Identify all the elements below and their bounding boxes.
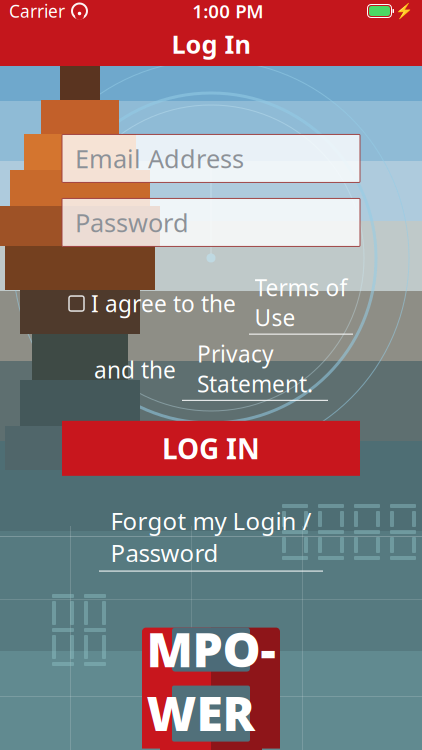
staticText: Terms of Use bbox=[254, 272, 347, 333]
staticText: Carrier bbox=[9, 0, 65, 22]
staticText: Log In bbox=[171, 27, 250, 61]
staticText: MPOWER bbox=[146, 617, 275, 744]
button[interactable]: Forgot my Login / Password bbox=[99, 505, 323, 571]
staticText: and the bbox=[94, 355, 182, 385]
button[interactable]: LOG IN bbox=[62, 421, 360, 476]
button[interactable]: Privacy Statement. bbox=[182, 339, 328, 401]
button[interactable]: I agree to the Terms of Use and the Priv… bbox=[69, 296, 84, 311]
staticText: ⚡ bbox=[395, 3, 413, 19]
staticText: CYBERSECURITY SUMMIT bbox=[153, 746, 268, 750]
button[interactable]: Terms of Use bbox=[249, 272, 353, 335]
staticText: Password bbox=[75, 206, 189, 239]
staticText: Email Address bbox=[75, 142, 244, 175]
staticText: I agree to the bbox=[91, 288, 242, 319]
staticText: LOG IN bbox=[162, 430, 260, 467]
staticText: Privacy Statement. bbox=[197, 339, 313, 399]
staticText: 1:00 PM bbox=[192, 0, 263, 23]
staticText: Forgot my Login / Password bbox=[110, 505, 311, 568]
